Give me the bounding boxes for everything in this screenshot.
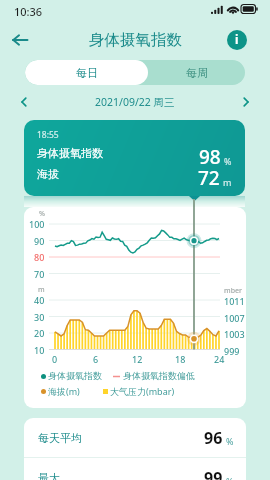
button[interactable]: Next day — [236, 92, 256, 112]
staticText: 2021/09/22 周三 — [95, 95, 175, 109]
staticText: 99 — [204, 467, 223, 480]
staticText: 海拔 — [37, 167, 59, 181]
staticText: 海拔(m) — [48, 385, 80, 397]
staticText: 72 — [198, 165, 220, 191]
staticText: 10 — [34, 344, 45, 356]
staticText: 1011 — [224, 295, 245, 307]
staticText: 每天平均 — [38, 431, 82, 445]
staticText: 大气压力(mbar) — [110, 385, 175, 397]
button[interactable]: 每日 — [25, 60, 245, 85]
staticText: 30 — [34, 311, 45, 323]
staticText: 身体摄氧指数 — [48, 370, 102, 381]
staticText: 24 — [214, 353, 225, 365]
button[interactable]: 18:55 — [24, 120, 245, 196]
staticText: 80 — [34, 251, 45, 263]
staticText: 100 — [29, 218, 45, 230]
button[interactable]: 每周 — [148, 60, 245, 85]
staticText: 身体摄氧指数 — [37, 146, 103, 160]
staticText: 每周 — [186, 66, 208, 80]
staticText: % — [226, 475, 234, 480]
staticText: 40 — [34, 294, 45, 306]
staticText: 18 — [175, 353, 186, 365]
button[interactable]: Previous day — [14, 92, 34, 112]
staticText: % — [226, 435, 234, 447]
staticText: 每日 — [76, 66, 98, 80]
staticText: 999 — [224, 345, 240, 357]
staticText: 0 — [52, 353, 58, 365]
staticText: 1007 — [224, 312, 245, 324]
staticText: 18:55 — [37, 129, 59, 141]
button[interactable]: Info — [227, 30, 247, 50]
staticText: m — [38, 285, 45, 295]
staticText: 身体摄氧指数偏低 — [123, 370, 195, 381]
staticText: 20 — [34, 327, 45, 339]
staticText: % — [224, 155, 232, 167]
staticText: 70 — [34, 268, 45, 280]
staticText: 98 — [199, 144, 221, 170]
button[interactable]: 每天平均 — [24, 418, 246, 457]
staticText: 身体摄氧指数 — [89, 30, 182, 50]
staticText: 12 — [132, 353, 143, 365]
staticText: 最大 — [38, 471, 60, 480]
staticText: 1003 — [224, 328, 245, 340]
staticText: mber — [224, 286, 242, 296]
button[interactable]: 最大 — [24, 458, 246, 480]
staticText: 96 — [204, 427, 223, 449]
button[interactable]: 每日 — [25, 60, 148, 85]
staticText: 10:36 — [14, 4, 43, 19]
staticText: 6 — [93, 353, 99, 365]
staticText: i — [235, 32, 239, 48]
staticText: % — [39, 209, 45, 219]
staticText: m — [223, 176, 232, 188]
button[interactable]: Back — [8, 28, 32, 52]
staticText: 90 — [34, 235, 45, 247]
